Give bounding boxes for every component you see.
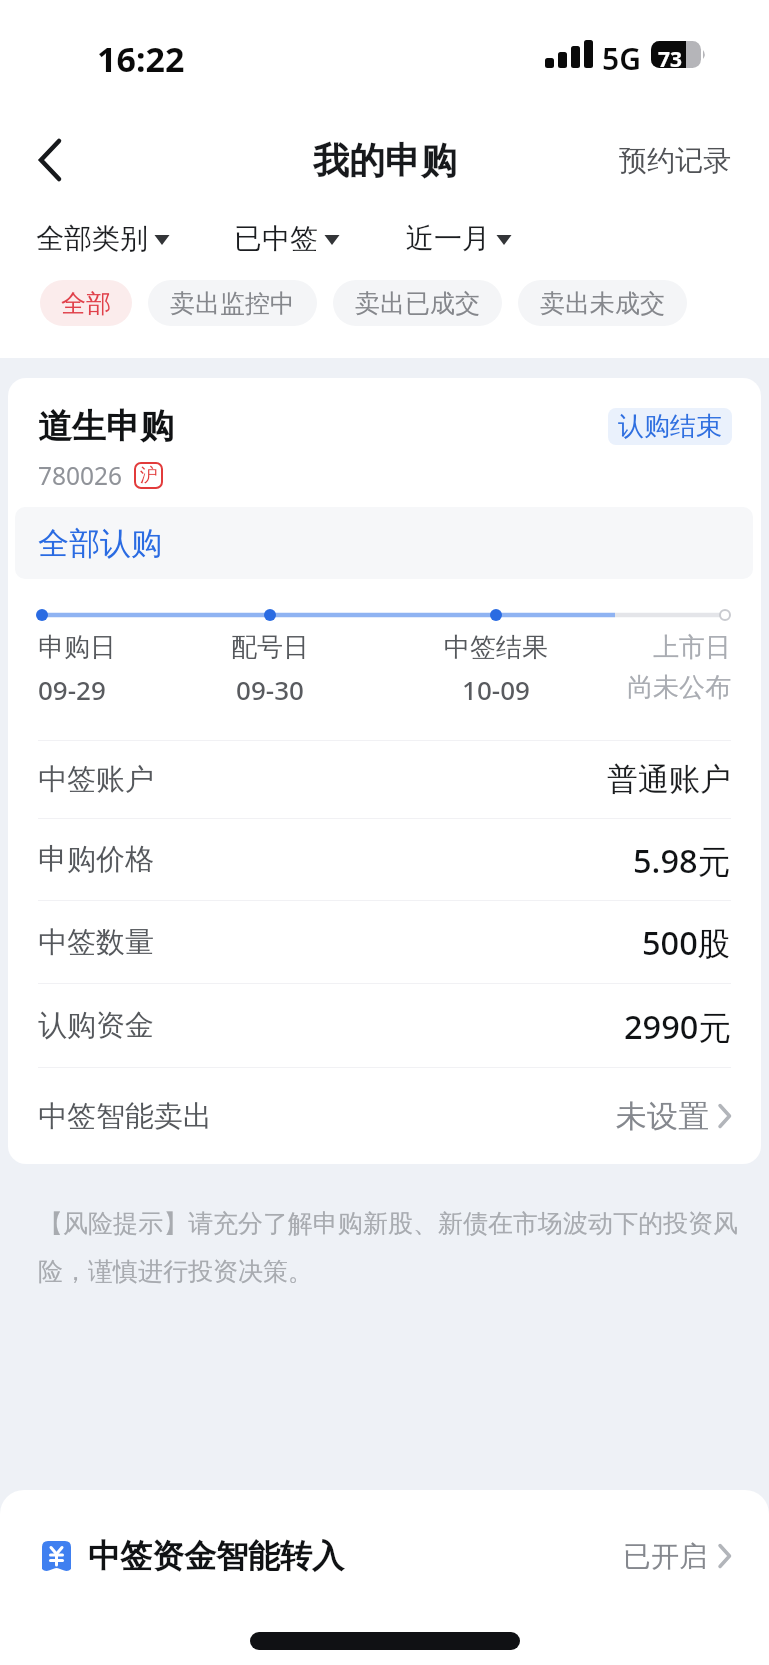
button[interactable]: 中签智能卖出	[8, 1068, 761, 1164]
staticText: 中签智能卖出	[38, 1098, 212, 1135]
staticText: 已中签	[234, 221, 318, 256]
staticText: 09-29	[38, 672, 106, 707]
button[interactable]: 中签资金智能转入	[42, 1528, 733, 1584]
staticText: 5.98元	[633, 838, 731, 882]
staticText: 卖出已成交	[355, 288, 480, 319]
staticText: 认购资金	[38, 1007, 154, 1044]
staticText: 2990元	[624, 1004, 731, 1048]
staticText: 16:22	[97, 36, 185, 82]
staticText: 780026	[38, 459, 123, 492]
staticText: 普通账户	[607, 760, 731, 799]
staticText: 73	[655, 45, 685, 74]
staticText: 卖出未成交	[540, 288, 665, 319]
button[interactable]: 已中签	[234, 221, 340, 256]
staticText: 5G	[602, 38, 641, 79]
staticText: 09-30	[225, 672, 315, 707]
staticText: 认购结束	[618, 410, 722, 443]
button[interactable]: 卖出监控中	[148, 280, 317, 326]
button[interactable]: 卖出未成交	[518, 280, 687, 326]
staticText: 中签数量	[38, 924, 154, 961]
staticText: 近一月	[406, 221, 490, 256]
staticText: 全部类别	[36, 221, 148, 256]
staticText: 配号日	[225, 631, 315, 664]
staticText: 【风险提示】请充分了解申购新股、新债在市场波动下的投资风 险，谨慎进行投资决策。	[38, 1208, 738, 1287]
staticText: 沪	[140, 464, 158, 487]
staticText: 申购日	[38, 631, 116, 664]
button[interactable]: 全部认购	[15, 507, 753, 579]
staticText: 申购价格	[38, 841, 154, 878]
staticText: 预约记录	[619, 143, 731, 178]
staticText: 10-09	[441, 672, 551, 707]
staticText: 中签结果	[441, 631, 551, 664]
staticText: 中签资金智能转入	[88, 1536, 344, 1576]
staticText: 全部认购	[38, 524, 162, 563]
button[interactable]: 全部类别	[36, 221, 170, 256]
staticText: 卖出监控中	[170, 288, 295, 319]
staticText: 未设置	[616, 1097, 709, 1136]
button[interactable]: 近一月	[406, 221, 512, 256]
button[interactable]: 卖出已成交	[333, 280, 502, 326]
staticText: 我的申购	[313, 138, 457, 183]
button[interactable]: 全部	[40, 280, 132, 326]
button[interactable]: 预约记录	[619, 143, 769, 178]
button[interactable]	[24, 134, 76, 186]
staticText: 500股	[642, 920, 731, 964]
staticText: 已开启	[623, 1539, 707, 1574]
staticText: 中签账户	[38, 761, 154, 798]
staticText: 尚未公布	[619, 671, 731, 704]
staticText: 全部	[61, 288, 111, 319]
staticText: 道生申购	[38, 405, 174, 448]
staticText: 上市日	[641, 631, 731, 664]
